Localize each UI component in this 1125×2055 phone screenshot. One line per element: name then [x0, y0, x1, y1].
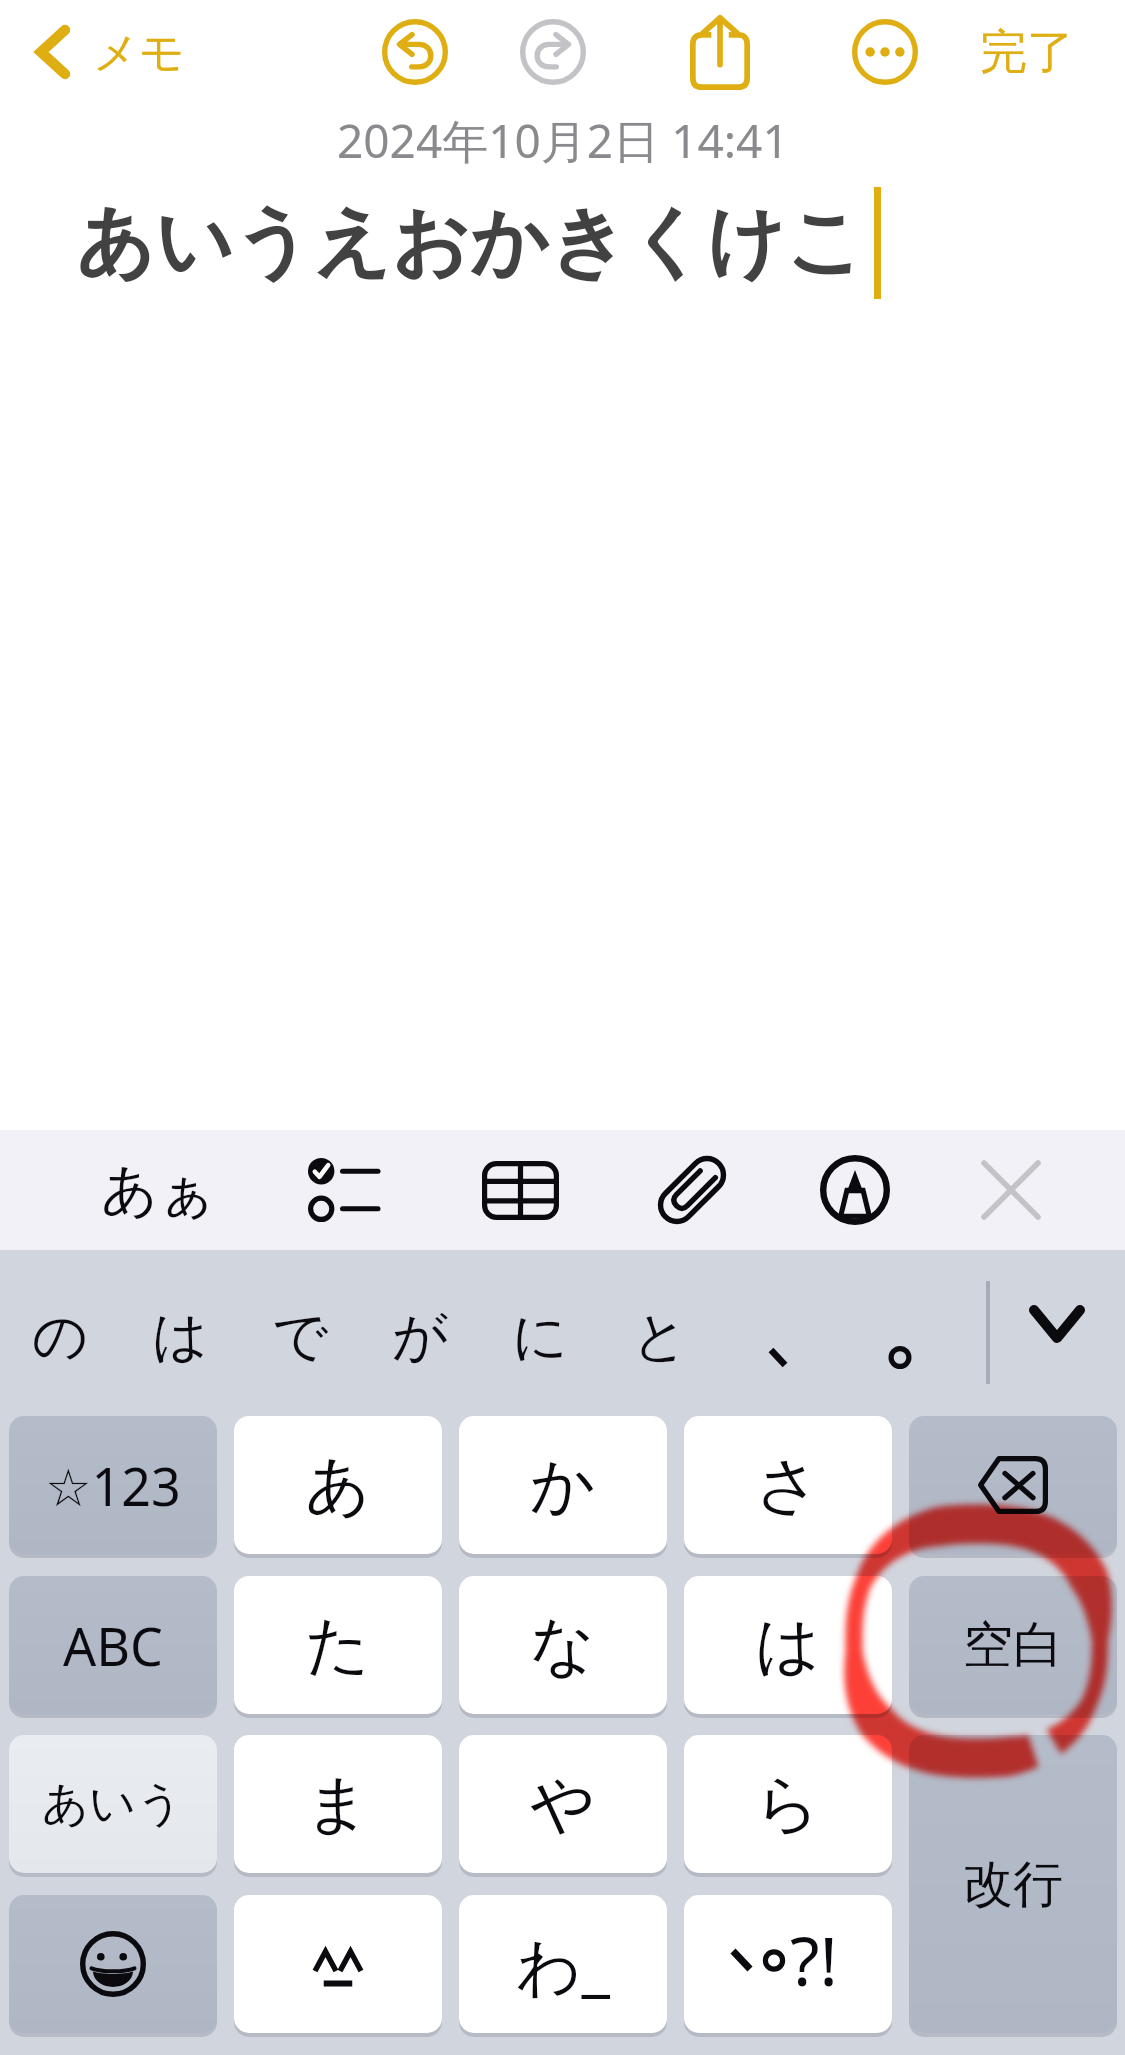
staticText: わ_	[516, 1921, 610, 2008]
button[interactable]: 空白	[909, 1576, 1117, 1714]
staticText: と	[632, 1302, 689, 1371]
staticText: か	[530, 1445, 596, 1526]
staticText: は	[152, 1302, 209, 1371]
button[interactable]: Emoji	[9, 1895, 217, 2033]
button[interactable]: 完了	[957, 0, 1097, 104]
staticText: さ	[755, 1445, 821, 1526]
staticText: ABC	[63, 1610, 163, 1681]
button[interactable]: Markup	[793, 1130, 917, 1250]
button[interactable]: ま	[234, 1735, 442, 1873]
staticText: メモ	[93, 25, 186, 82]
staticText: ら	[755, 1764, 821, 1845]
staticText: は	[755, 1605, 821, 1686]
staticText: 空白	[963, 1614, 1063, 1677]
button[interactable]: わ_	[459, 1895, 667, 2033]
button[interactable]: や	[459, 1735, 667, 1873]
button[interactable]: ABC	[9, 1576, 217, 1714]
button[interactable]: ☆123	[9, 1416, 217, 1554]
staticText: が	[392, 1302, 449, 1371]
staticText: ま	[305, 1764, 371, 1845]
button[interactable]: Close	[949, 1130, 1073, 1250]
button[interactable]: メモ	[8, 0, 198, 104]
staticText: に	[512, 1302, 569, 1371]
staticText: ?!	[790, 1913, 838, 2006]
staticText: の	[32, 1302, 89, 1371]
button[interactable]: Redo	[501, 0, 605, 104]
button[interactable]: ?!	[684, 1895, 892, 2033]
button[interactable]	[840, 1278, 960, 1394]
staticText: で	[272, 1302, 329, 1371]
staticText: や	[530, 1764, 596, 1845]
button[interactable]: は	[120, 1278, 240, 1394]
staticText: あ	[305, 1445, 371, 1526]
button[interactable]	[720, 1278, 840, 1394]
staticText: な	[530, 1605, 596, 1686]
button[interactable]: Checklist	[281, 1130, 405, 1250]
staticText: 2024年10月2日 14:41	[337, 109, 789, 172]
button[interactable]: Undo	[363, 0, 467, 104]
staticText: あいう	[42, 1775, 184, 1833]
button[interactable]: な	[459, 1576, 667, 1714]
button[interactable]: か	[459, 1416, 667, 1554]
button[interactable]: Delete	[909, 1416, 1117, 1554]
button[interactable]	[234, 1895, 442, 2033]
button[interactable]: は	[684, 1576, 892, 1714]
staticText: あぁ	[101, 1155, 216, 1226]
button[interactable]: Table	[458, 1130, 582, 1250]
staticText: 改行	[963, 1853, 1063, 1916]
button[interactable]: あいう	[9, 1735, 217, 1873]
button[interactable]: に	[480, 1278, 600, 1394]
staticText: 完了	[980, 23, 1074, 82]
button[interactable]: の	[0, 1278, 120, 1394]
button[interactable]: と	[600, 1278, 720, 1394]
staticText: ☆123	[45, 1450, 181, 1521]
button[interactable]: あ	[234, 1416, 442, 1554]
button[interactable]: さ	[684, 1416, 892, 1554]
staticText: た	[305, 1605, 371, 1686]
button[interactable]: Attach	[630, 1130, 754, 1250]
button[interactable]: が	[360, 1278, 480, 1394]
staticText: あいうえおかきくけこ	[76, 194, 865, 291]
button[interactable]: た	[234, 1576, 442, 1714]
button[interactable]: Hide keyboard	[1007, 1270, 1107, 1378]
button[interactable]: Text style	[96, 1130, 220, 1250]
button[interactable]: で	[240, 1278, 360, 1394]
button[interactable]: ら	[684, 1735, 892, 1873]
button[interactable]: Share	[668, 0, 772, 104]
button[interactable]: 改行	[909, 1735, 1117, 2033]
button[interactable]: More options	[833, 0, 937, 104]
